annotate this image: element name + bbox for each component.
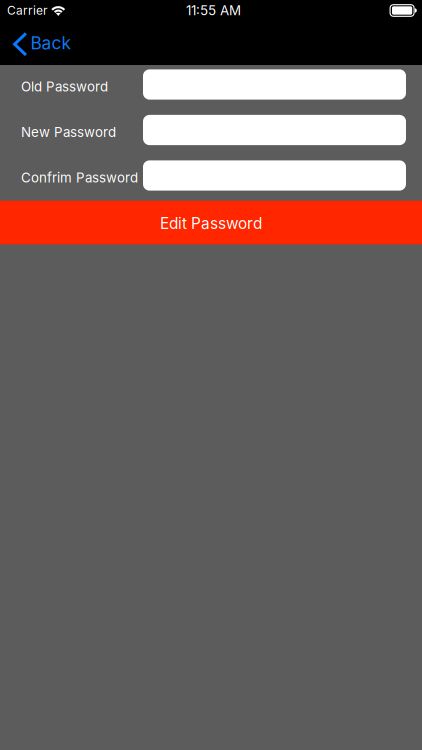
button[interactable]: Confrim Password — [143, 160, 406, 191]
staticText: Carrier — [7, 3, 48, 18]
button[interactable]: Back — [0, 21, 81, 65]
staticText: Old Password — [21, 78, 108, 95]
staticText: 11:55 AM — [186, 2, 241, 18]
button[interactable]: Edit Password — [0, 201, 422, 244]
button[interactable]: New Password — [143, 115, 406, 145]
staticText: Edit Password — [160, 214, 262, 233]
staticText: New Password — [21, 124, 116, 140]
staticText: Back — [30, 32, 71, 53]
staticText: Confrim Password — [21, 169, 138, 186]
button[interactable]: Old Password — [143, 69, 406, 100]
